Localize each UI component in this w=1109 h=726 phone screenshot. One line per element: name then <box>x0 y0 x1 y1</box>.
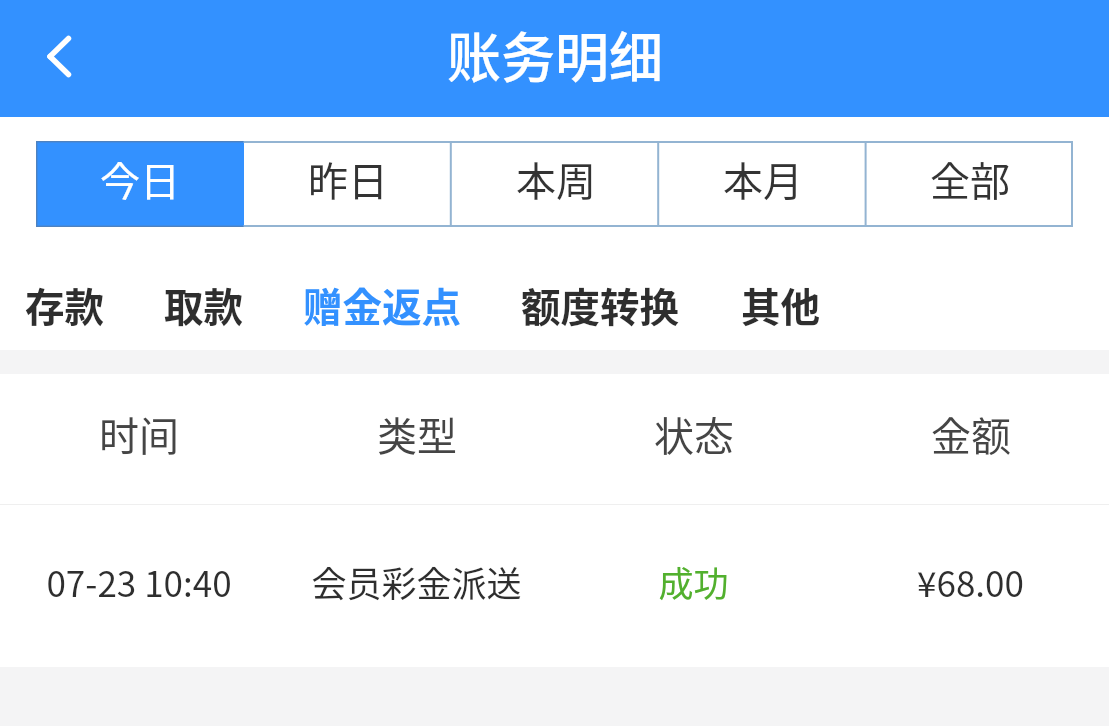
staticText: 时间 <box>99 405 179 463</box>
button[interactable]: 昨日 <box>244 141 452 227</box>
staticText: 存款 <box>25 276 104 333</box>
button[interactable]: 本月 <box>659 141 866 227</box>
button[interactable]: 取款 <box>134 266 273 343</box>
button[interactable]: 今日 <box>36 141 244 227</box>
staticText: 取款 <box>164 276 243 333</box>
staticText: 会员彩金派送 <box>311 556 522 607</box>
staticText: 全部 <box>930 150 1010 208</box>
button[interactable]: 本周 <box>452 141 659 227</box>
button[interactable]: 其他 <box>709 266 850 343</box>
staticText: 昨日 <box>308 150 388 208</box>
staticText: 本月 <box>723 150 803 208</box>
button[interactable]: 全部 <box>866 141 1073 227</box>
staticText: 账务明细 <box>447 15 663 93</box>
button[interactable]: Back <box>18 0 98 117</box>
staticText: 其他 <box>741 276 820 333</box>
staticText: ¥68.00 <box>917 556 1024 607</box>
staticText: 07-23 10:40 <box>46 556 232 607</box>
button[interactable]: 额度转换 <box>491 266 709 343</box>
staticText: 类型 <box>377 405 457 463</box>
staticText: 金额 <box>931 405 1011 463</box>
button[interactable]: 存款 <box>0 266 134 343</box>
button[interactable]: 07-23 10:40 <box>0 505 1109 667</box>
staticText: 赠金返点 <box>303 276 461 333</box>
staticText: 本周 <box>516 150 596 208</box>
staticText: 今日 <box>100 150 180 208</box>
staticText: 成功 <box>658 556 729 607</box>
staticText: 状态 <box>654 405 734 463</box>
staticText: 额度转换 <box>521 276 679 333</box>
button[interactable]: 赠金返点 <box>273 266 491 343</box>
